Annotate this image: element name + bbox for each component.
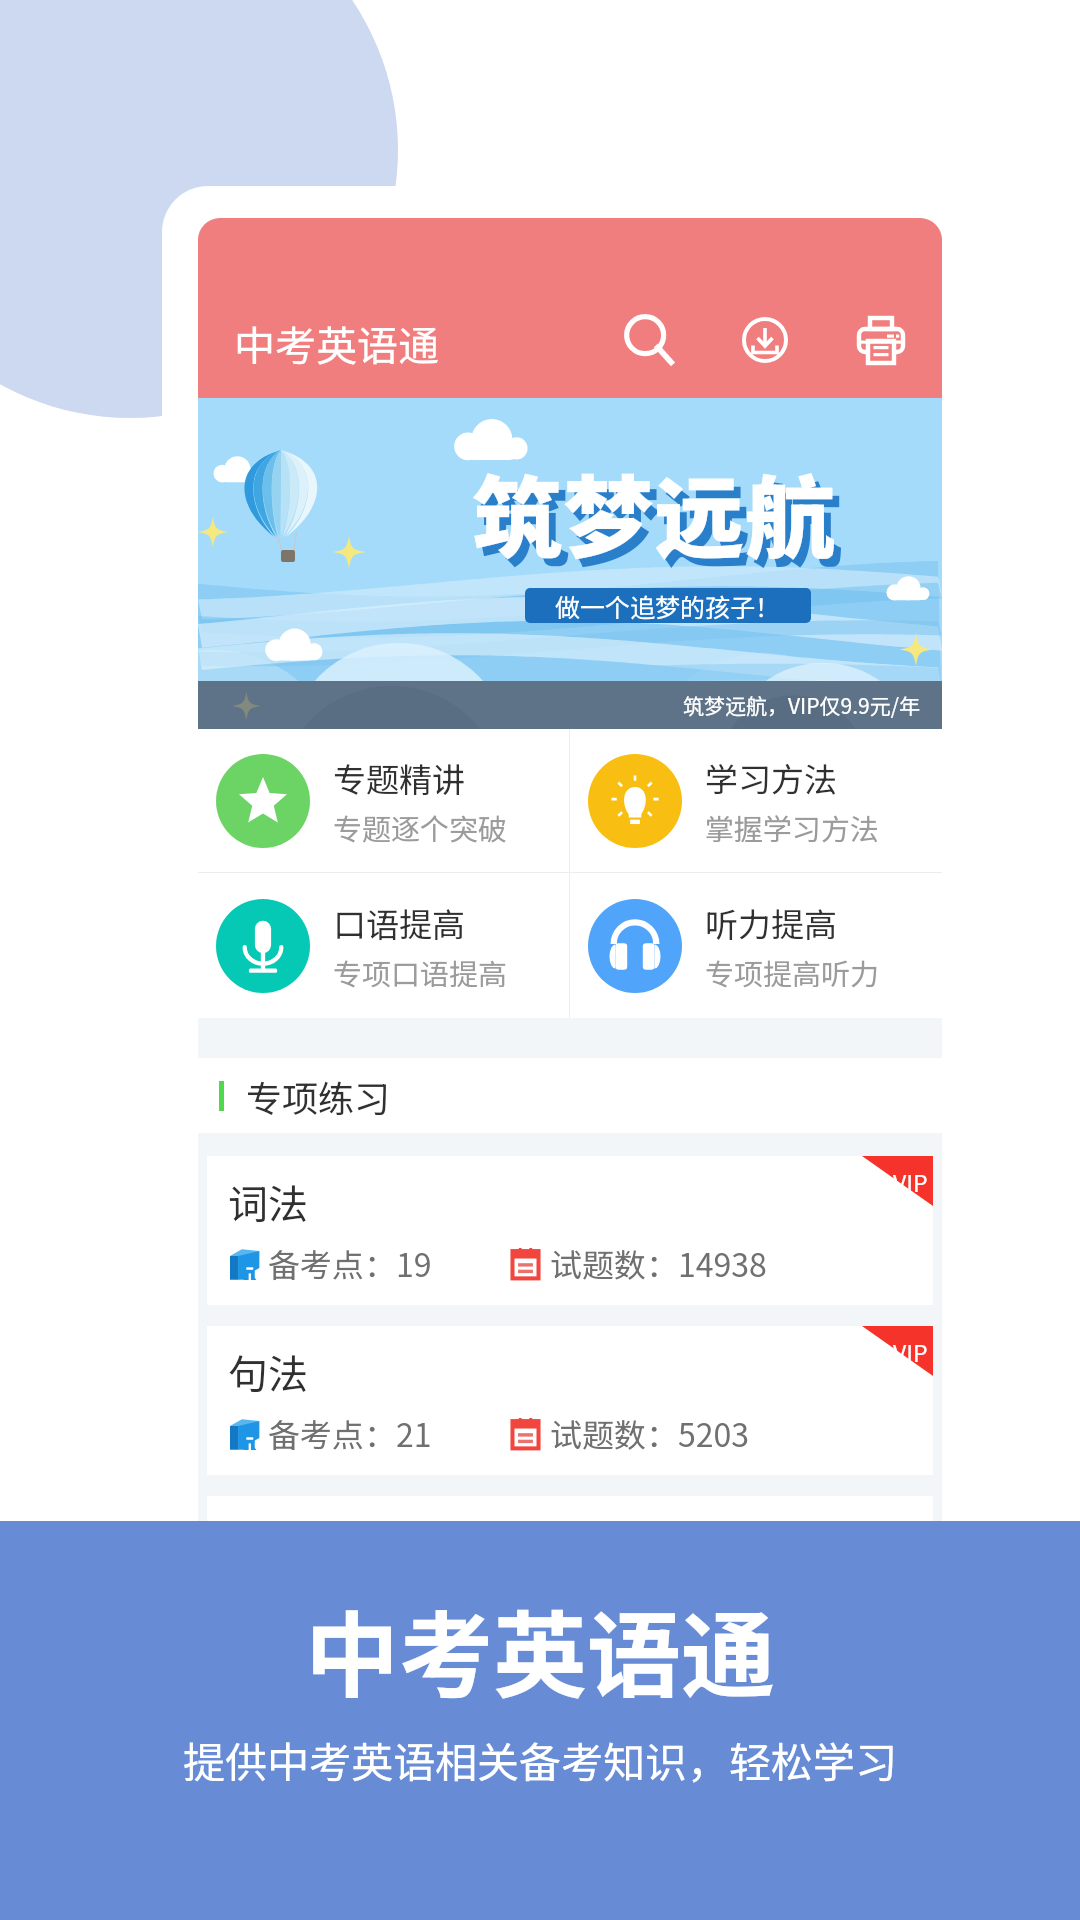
button[interactable]: Print bbox=[842, 301, 920, 379]
staticText: 中考英语通 bbox=[305, 1581, 776, 1717]
staticText: 筑梦远航 bbox=[472, 447, 836, 577]
staticText: 试题数：5203 bbox=[550, 1410, 750, 1456]
staticText: 专项口语提高 bbox=[333, 951, 508, 993]
button[interactable]: 听力提高 bbox=[570, 873, 942, 1018]
staticText: 句法 bbox=[228, 1343, 308, 1401]
staticText: 做一个追梦的孩子！ bbox=[555, 588, 781, 623]
button[interactable]: 学习方法 bbox=[570, 729, 942, 872]
staticText: 专项提高听力 bbox=[705, 951, 880, 993]
staticText: 提供中考英语相关备考知识，轻松学习 bbox=[183, 1729, 898, 1790]
staticText: 专题逐个突破 bbox=[333, 806, 508, 848]
staticText: 专题精讲 bbox=[333, 754, 465, 802]
staticText: VIP bbox=[893, 1335, 928, 1368]
button[interactable]: 专题精讲 bbox=[198, 729, 569, 872]
staticText: 试题数：14938 bbox=[550, 1240, 767, 1286]
button[interactable]: 做一个追梦的孩子！ bbox=[525, 588, 811, 623]
staticText: 掌握学习方法 bbox=[705, 806, 880, 848]
staticText: 学习方法 bbox=[705, 754, 837, 802]
button[interactable]: 口语提高 bbox=[198, 873, 569, 1018]
staticText: 中考英语通 bbox=[234, 313, 439, 372]
button[interactable]: Search bbox=[610, 301, 688, 379]
button[interactable]: 句法 bbox=[207, 1326, 933, 1475]
staticText: 口语提高 bbox=[333, 899, 465, 947]
button[interactable]: 词法 bbox=[207, 1156, 933, 1305]
staticText: 听力提高 bbox=[705, 899, 837, 947]
staticText: 专项练习 bbox=[246, 1070, 391, 1122]
staticText: 备考点：19 bbox=[268, 1240, 432, 1286]
staticText: 筑梦远航 bbox=[479, 455, 843, 585]
staticText: 备考点：21 bbox=[268, 1410, 432, 1456]
staticText: 筑梦远航，VIP仅9.9元/年 bbox=[683, 690, 920, 720]
staticText: VIP bbox=[893, 1165, 928, 1198]
button[interactable]: Download bbox=[726, 301, 804, 379]
staticText: 词法 bbox=[228, 1173, 308, 1231]
